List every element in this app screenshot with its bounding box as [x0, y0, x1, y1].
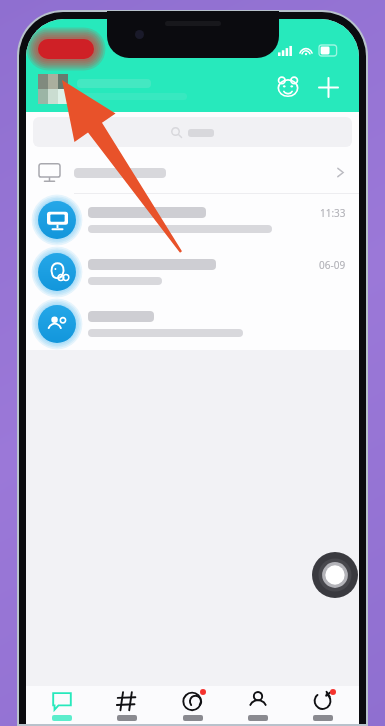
button[interactable]: 11:33 — [26, 194, 359, 246]
button[interactable]: Channels — [98, 690, 156, 724]
button[interactable] — [26, 152, 359, 193]
button[interactable] — [33, 117, 352, 147]
button[interactable]: Contacts — [229, 690, 287, 724]
button[interactable] — [26, 298, 359, 350]
button[interactable]: Mascot — [271, 70, 305, 104]
button[interactable]: Moments — [294, 690, 352, 724]
button[interactable]: Add — [311, 70, 345, 104]
button[interactable]: 06-09 — [26, 246, 359, 298]
button[interactable]: Chats — [33, 690, 91, 724]
staticText: 06-09 — [319, 258, 346, 272]
staticText: 11:33 — [320, 206, 346, 220]
button[interactable]: World — [164, 690, 222, 724]
